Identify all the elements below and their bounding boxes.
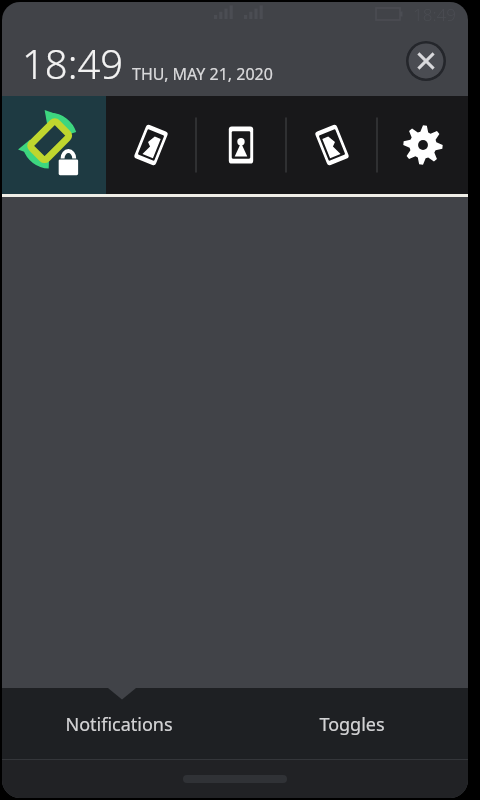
button[interactable]: Landscape lock [286, 96, 377, 194]
button[interactable]: Drag handle [2, 760, 468, 798]
staticText: Notifications [65, 712, 173, 737]
button[interactable]: Rotation locked [2, 96, 106, 194]
button[interactable]: Auto-rotate [106, 96, 196, 194]
button[interactable]: Portrait lock [196, 96, 286, 194]
button[interactable]: Close [406, 41, 446, 81]
button[interactable]: Notifications [2, 688, 235, 760]
button[interactable]: Settings [377, 96, 468, 194]
staticText: THU, MAY 21, 2020 [132, 63, 273, 85]
staticText: Toggles [319, 712, 385, 737]
staticText: 18:49 [22, 36, 124, 90]
button[interactable]: Toggles [235, 688, 468, 760]
